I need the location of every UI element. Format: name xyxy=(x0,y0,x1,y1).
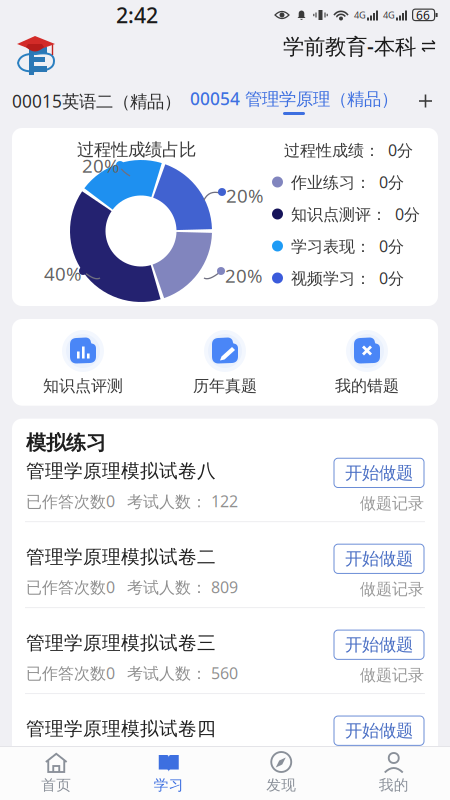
button[interactable]: 开始做题 xyxy=(334,458,424,487)
staticText: 已作答次数0 考试人数： 809 xyxy=(26,576,238,598)
button[interactable]: 00054 管理学原理（精品） xyxy=(190,87,398,115)
button[interactable]: 首页 xyxy=(0,752,112,794)
button[interactable]: 开始做题 xyxy=(334,630,424,659)
staticText: 管理学原理模拟试卷八 xyxy=(26,460,216,482)
button[interactable]: 历年真题 xyxy=(154,330,296,396)
staticText: 发现 xyxy=(266,776,296,794)
staticText: 管理学原理模拟试卷四 xyxy=(26,717,216,740)
staticText: 管理学原理模拟试卷二 xyxy=(26,545,216,568)
button[interactable]: 发现 xyxy=(225,752,337,794)
button[interactable]: 做题记录 xyxy=(360,665,424,685)
staticText: 做题记录 xyxy=(360,665,424,685)
staticText: 过程性成绩： 0分 xyxy=(284,139,413,161)
staticText: 知识点评测 xyxy=(43,376,123,396)
staticText: 做题记录 xyxy=(360,579,424,599)
staticText: 我的 xyxy=(379,776,409,794)
staticText: 已作答次数0 考试人数： 122 xyxy=(26,490,238,512)
staticText: 20% xyxy=(82,153,120,178)
button[interactable]: 开始做题 xyxy=(334,544,424,573)
staticText: 过程性成绩占比 xyxy=(77,139,196,160)
staticText: 开始做题 xyxy=(345,548,413,569)
staticText: 2:42 xyxy=(116,1,158,29)
staticText: 40% xyxy=(44,261,82,286)
staticText: 学习表现： 0分 xyxy=(291,235,404,257)
staticText: 00015英语二（精品） xyxy=(12,89,181,112)
button[interactable]: 做题记录 xyxy=(360,493,424,513)
staticText: 学习 xyxy=(154,776,184,794)
staticText: 开始做题 xyxy=(345,720,413,741)
staticText: 4G xyxy=(383,9,395,21)
staticText: 作业练习： 0分 xyxy=(291,171,404,193)
button[interactable]: 学习 xyxy=(112,752,225,794)
staticText: 开始做题 xyxy=(345,634,413,655)
staticText: 00054 管理学原理（精品） xyxy=(190,87,398,110)
staticText: 已作答次数0 考试人数： 560 xyxy=(26,662,238,684)
staticText: 视频学习： 0分 xyxy=(291,267,404,289)
staticText: 我的错题 xyxy=(335,376,399,396)
staticText: 模拟练习 xyxy=(26,431,106,455)
staticText: 20% xyxy=(226,183,264,208)
button[interactable]: 做题记录 xyxy=(360,579,424,599)
staticText: 知识点测评： 0分 xyxy=(291,203,420,225)
staticText: 做题记录 xyxy=(360,493,424,513)
staticText: 首页 xyxy=(41,776,71,794)
button[interactable]: 我的 xyxy=(337,752,450,794)
staticText: 管理学原理模拟试卷三 xyxy=(26,631,216,654)
button[interactable]: 知识点评测 xyxy=(12,330,154,396)
staticText: 20% xyxy=(225,263,263,288)
staticText: 做题记录 xyxy=(360,751,424,771)
staticText: 学前教育-本科 xyxy=(283,32,416,60)
button[interactable]: 学前教育-本科 xyxy=(283,32,450,60)
button[interactable]: 添加课程 xyxy=(407,92,450,109)
staticText: 开始做题 xyxy=(345,462,413,483)
button[interactable]: 开始做题 xyxy=(334,716,424,745)
button[interactable]: 做题记录 xyxy=(360,751,424,771)
staticText: 66 xyxy=(416,7,430,23)
staticText: 历年真题 xyxy=(193,376,257,396)
staticText: 已作答次数0 考试人数： 330 xyxy=(26,748,238,770)
button[interactable]: 00015英语二（精品） xyxy=(0,89,181,112)
staticText: 4G xyxy=(354,9,366,21)
button[interactable]: 我的错题 xyxy=(296,330,438,396)
